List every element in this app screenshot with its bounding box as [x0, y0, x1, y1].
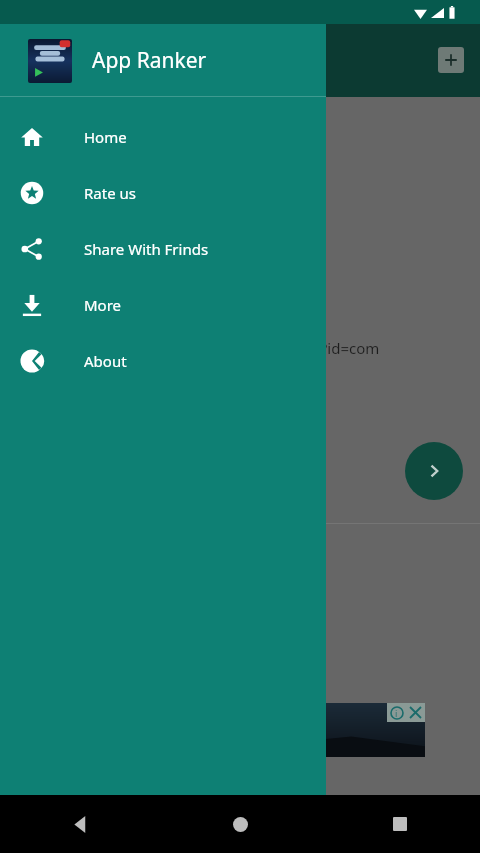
button[interactable]: Home: [0, 109, 326, 165]
staticText: About: [84, 351, 127, 371]
staticText: App Ranker: [92, 46, 207, 75]
staticText: Share With Frinds: [84, 239, 209, 259]
button[interactable]: About: [0, 333, 326, 389]
button[interactable]: Back: [62, 806, 98, 842]
button[interactable]: Recents: [382, 806, 418, 842]
button[interactable]: Add: [438, 47, 464, 73]
button[interactable]: Next: [405, 442, 463, 500]
staticText: Home: [84, 127, 127, 147]
staticText: Rate us: [84, 183, 136, 203]
button[interactable]: Share With Frinds: [0, 221, 326, 277]
button[interactable]: More: [0, 277, 326, 333]
button[interactable]: Rate us: [0, 165, 326, 221]
staticText: .app.tool: [20, 359, 83, 379]
button[interactable]: Home: [222, 806, 258, 842]
button[interactable]: Advertisement: [90, 703, 425, 757]
staticText: https://play.google.com/store/apps/detai…: [20, 338, 380, 358]
button[interactable]: Close ad: [406, 703, 425, 722]
staticText: i: [395, 707, 398, 719]
staticText: More: [84, 295, 122, 315]
